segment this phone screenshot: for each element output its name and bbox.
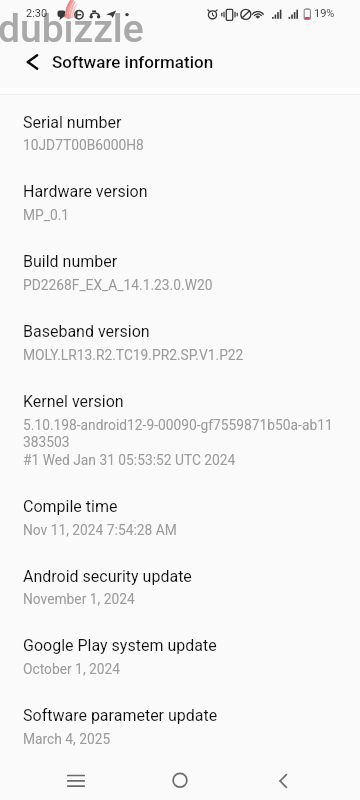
button[interactable]: Recent apps [54,758,98,800]
staticText: Software information [52,52,214,72]
button[interactable] [0,378,360,468]
staticText: Baseband version [23,322,150,341]
button[interactable] [0,308,360,363]
staticText: Compile time [23,497,118,516]
staticText: Android security update [23,567,192,586]
button[interactable] [0,692,360,747]
staticText: Kernel version [23,392,124,411]
staticText: 10JD7T00B6000H8 [23,137,144,153]
staticText: #1 Wed Jan 31 05:53:52 UTC 2024 [23,452,236,468]
button[interactable] [0,622,360,677]
staticText: November 1, 2024 [23,591,135,607]
staticText: Google Play system update [23,636,217,655]
staticText: MOLY.LR13.R2.TC19.PR2.SP.V1.P22 [23,347,244,363]
staticText: Software parameter update [23,706,218,725]
button[interactable] [0,483,360,538]
staticText: 2:30 [26,7,48,20]
staticText: March 4, 2025 [23,731,111,747]
staticText: October 1, 2024 [23,661,121,677]
button[interactable]: Navigate up [8,38,56,86]
staticText: Nov 11, 2024 7:54:28 AM [23,522,177,538]
button[interactable] [0,238,360,293]
staticText: Hardware version [23,182,148,201]
staticText: PD2268F_EX_A_14.1.23.0.W20 [23,277,213,293]
button[interactable] [0,553,360,608]
staticText: MP_0.1 [23,207,70,223]
staticText: dubizzle [0,6,144,52]
button[interactable] [0,168,360,223]
staticText: Serial number [23,113,122,132]
staticText: 383503 [23,434,70,450]
button[interactable]: Back [261,758,305,800]
button[interactable]: Home [158,758,202,800]
staticText: Build number [23,252,118,271]
button[interactable] [0,99,360,154]
staticText: 19% [314,7,335,20]
staticText: 5.10.198-android12-9-00090-gf7559871b50a… [23,417,333,433]
